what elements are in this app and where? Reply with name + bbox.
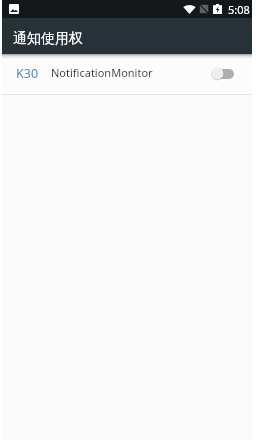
button[interactable]: Toggle notification access bbox=[210, 67, 234, 81]
staticText: NotificationMonitor bbox=[51, 65, 153, 80]
staticText: 5:08 bbox=[228, 2, 250, 17]
staticText: K30 bbox=[16, 65, 39, 82]
button[interactable]: K30 bbox=[2, 54, 252, 94]
staticText: 通知使用权 bbox=[13, 30, 83, 48]
